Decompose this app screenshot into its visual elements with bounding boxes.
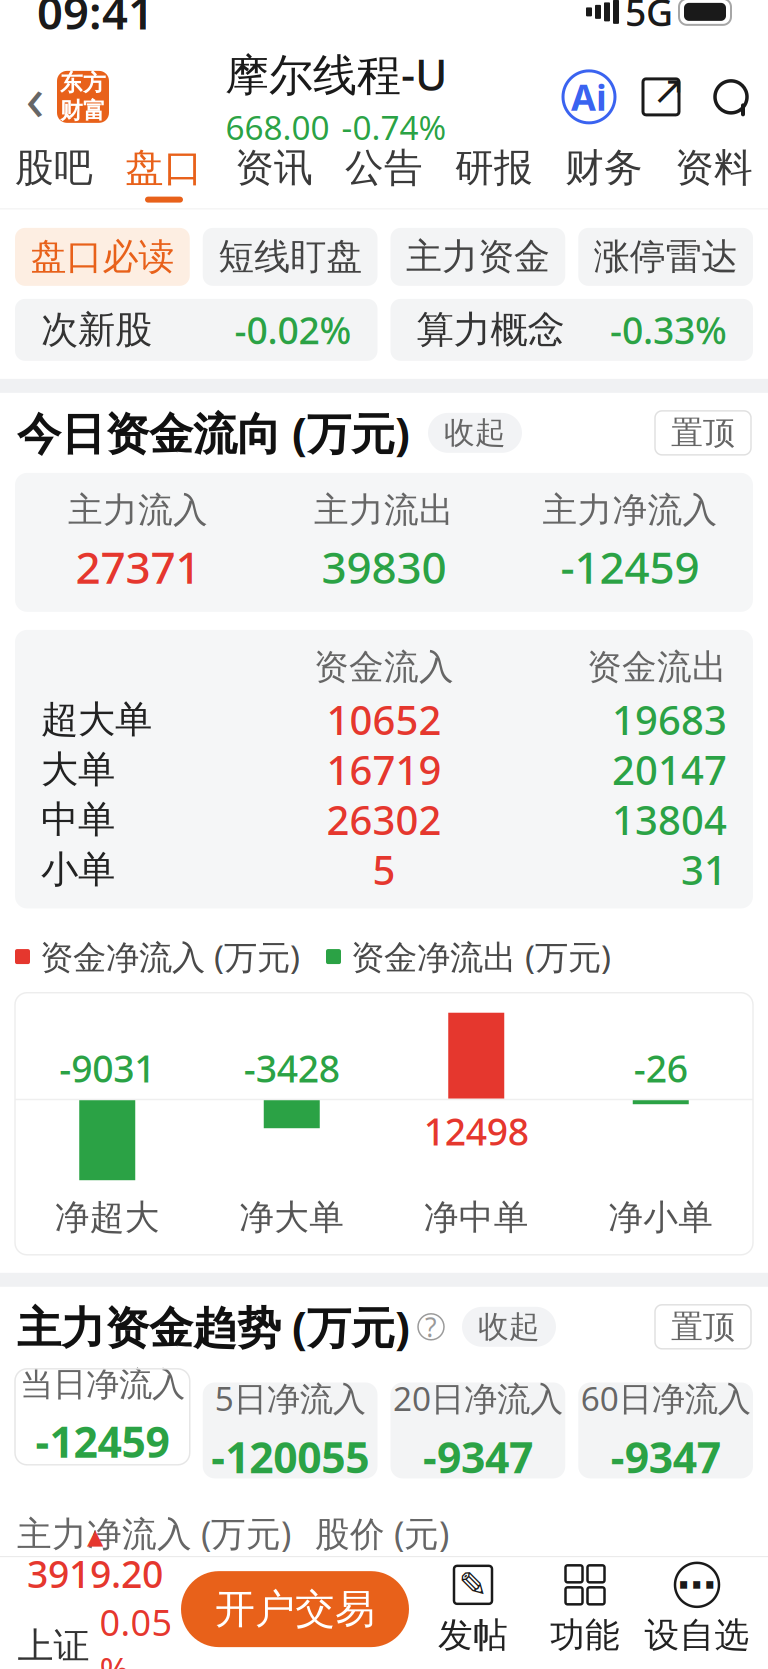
button[interactable]: 资讯: [219, 138, 329, 208]
staticText: ▲: [87, 1524, 103, 1549]
staticText: 次新股: [41, 307, 152, 353]
button[interactable]: 研报: [439, 138, 549, 208]
staticText: 39830: [321, 537, 446, 596]
staticText: -0.02%: [234, 305, 351, 355]
staticText: 0.05%: [99, 1598, 172, 1669]
button[interactable]: 财务: [549, 138, 659, 208]
staticText: 10652: [326, 693, 441, 746]
staticText: 算力概念: [416, 307, 564, 353]
staticText: ?: [425, 1309, 437, 1344]
staticText: 19683: [612, 693, 727, 746]
staticText: -0.74%: [341, 105, 446, 149]
staticText: 资讯: [235, 144, 313, 192]
staticText: -120055: [211, 1428, 369, 1485]
staticText: 财务: [565, 144, 643, 192]
staticText: 股价 (元): [315, 1510, 449, 1556]
staticText: 资金净流入 (万元): [40, 934, 300, 979]
staticText: -3428: [244, 1043, 340, 1093]
staticText: 12498: [424, 1106, 529, 1156]
button[interactable]: 置顶: [655, 1305, 751, 1349]
button[interactable]: 短线盯盘: [203, 228, 378, 286]
staticText: ✎: [458, 1565, 487, 1604]
button[interactable]: 盘口: [109, 138, 219, 208]
staticText: 今日资金流向 (万元): [17, 404, 410, 462]
button[interactable]: 分享: [637, 73, 685, 121]
staticText: 668.00: [225, 105, 329, 149]
staticText: -12459: [35, 1413, 169, 1470]
staticText: 小单: [41, 846, 115, 892]
button[interactable]: 股吧: [0, 138, 109, 208]
staticText: 主力资金: [406, 235, 550, 279]
staticText: 大单: [41, 746, 115, 792]
staticText: 功能: [550, 1614, 620, 1656]
staticText: 13804: [612, 793, 727, 846]
button[interactable]: 搜索: [707, 73, 755, 121]
staticText: 盘口: [125, 144, 203, 192]
button[interactable]: AI 助手: [563, 71, 615, 123]
staticText: 60日净流入: [581, 1376, 751, 1420]
staticText: 收起: [478, 1308, 540, 1346]
button[interactable]: 资料: [659, 138, 768, 208]
staticText: ↗: [652, 67, 686, 113]
button[interactable]: 东方财富: [57, 71, 109, 123]
staticText: 5G: [625, 0, 673, 37]
staticText: 5日净流入: [215, 1376, 366, 1420]
staticText: 资料: [675, 144, 753, 192]
staticText: 净中单: [424, 1196, 529, 1239]
staticText: 20日净流入: [393, 1376, 563, 1420]
staticText: 主力资金趋势 (万元): [17, 1298, 410, 1356]
button[interactable]: 60日净流入: [578, 1382, 753, 1478]
button[interactable]: 20日净流入: [390, 1382, 565, 1478]
button[interactable]: 功能: [529, 1562, 641, 1656]
staticText: ⋯: [677, 1562, 717, 1607]
staticText: 开户交易: [215, 1585, 375, 1634]
staticText: 资金流入: [314, 646, 454, 688]
staticText: 东方: [60, 69, 106, 97]
staticText: 净小单: [608, 1196, 713, 1239]
staticText: -26: [634, 1043, 688, 1093]
button[interactable]: 上证指数: [15, 1524, 175, 1669]
staticText: 净超大: [55, 1196, 160, 1239]
staticText: 财富: [60, 97, 106, 125]
staticText: 短线盯盘: [218, 235, 362, 279]
button[interactable]: 次新股: [15, 299, 377, 361]
button[interactable]: ✎: [417, 1562, 529, 1656]
staticText: ‹: [25, 56, 44, 137]
staticText: 主力流入: [68, 489, 208, 531]
staticText: -9347: [611, 1428, 721, 1485]
staticText: 主力流出: [314, 489, 454, 531]
button[interactable]: 公告: [329, 138, 439, 208]
button[interactable]: 收起: [428, 413, 522, 453]
button[interactable]: 算力概念: [390, 299, 753, 361]
staticText: 资金净流出 (万元): [351, 934, 611, 979]
button[interactable]: 当日净流入: [15, 1369, 190, 1492]
staticText: 净大单: [239, 1196, 344, 1239]
button[interactable]: 主力资金: [390, 228, 565, 286]
staticText: 中单: [41, 796, 115, 842]
button[interactable]: 收起: [462, 1307, 556, 1347]
staticText: 置顶: [671, 413, 735, 452]
staticText: ▼: [91, 1459, 114, 1492]
staticText: 当日净流入: [20, 1364, 185, 1405]
staticText: 主力净流入: [542, 489, 717, 531]
staticText: -9347: [423, 1428, 533, 1485]
button[interactable]: ⋯: [641, 1562, 753, 1656]
staticText: 置顶: [671, 1307, 735, 1346]
staticText: 20147: [612, 743, 727, 796]
button[interactable]: 置顶: [655, 411, 751, 455]
staticText: 设自选: [644, 1614, 749, 1656]
button[interactable]: 5日净流入: [203, 1382, 378, 1478]
staticText: 股吧: [15, 144, 93, 192]
staticText: 摩尔线程-U: [225, 44, 447, 103]
staticText: 09:41: [37, 0, 154, 42]
staticText: 主力净流入 (万元): [17, 1510, 291, 1556]
staticText: 资金流出: [587, 646, 727, 688]
button[interactable]: 开户交易: [181, 1571, 409, 1647]
staticText: 发帖: [438, 1614, 508, 1656]
button[interactable]: 涨停雷达: [578, 228, 753, 286]
button[interactable]: 返回: [13, 67, 57, 127]
staticText: -0.33%: [610, 305, 727, 355]
button[interactable]: 盘口必读: [15, 228, 190, 286]
staticText: 27371: [75, 537, 200, 596]
staticText: 31: [681, 843, 727, 896]
